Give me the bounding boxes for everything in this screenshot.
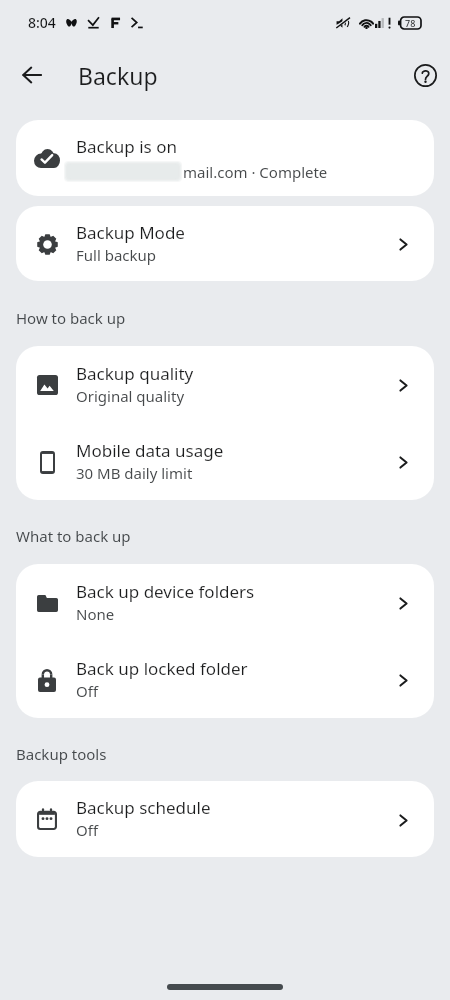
button[interactable]: Back: [10, 53, 54, 97]
staticText: 8:04: [28, 13, 56, 32]
staticText: Backup is on: [76, 135, 177, 158]
staticText: Backup Mode: [76, 221, 185, 244]
staticText: 30 MB daily limit: [76, 463, 193, 483]
staticText: Back up locked folder: [76, 657, 248, 680]
staticText: Off: [76, 681, 99, 701]
staticText: Backup quality: [76, 362, 194, 385]
staticText: Original quality: [76, 386, 185, 406]
button[interactable]: Back up device folders: [16, 564, 434, 641]
staticText: Backup schedule: [76, 796, 211, 819]
button[interactable]: Mobile data usage: [16, 423, 434, 500]
staticText: Backup tools: [16, 744, 107, 764]
staticText: What to back up: [16, 526, 131, 546]
staticText: None: [76, 604, 115, 624]
button[interactable]: Back up locked folder: [16, 641, 434, 718]
button[interactable]: Backup quality: [16, 346, 434, 423]
staticText: Mobile data usage: [76, 439, 224, 462]
staticText: mail.com · Complete: [183, 162, 328, 182]
staticText: How to back up: [16, 308, 126, 328]
button[interactable]: Help: [405, 55, 445, 95]
staticText: Off: [76, 820, 99, 840]
staticText: Back up device folders: [76, 580, 255, 603]
staticText: Backup: [78, 60, 158, 91]
button[interactable]: Backup Mode: [16, 206, 434, 281]
staticText: 78: [405, 17, 416, 29]
button[interactable]: Backup is on: [16, 120, 434, 196]
button[interactable]: Backup schedule: [16, 781, 434, 857]
staticText: Full backup: [76, 245, 157, 265]
